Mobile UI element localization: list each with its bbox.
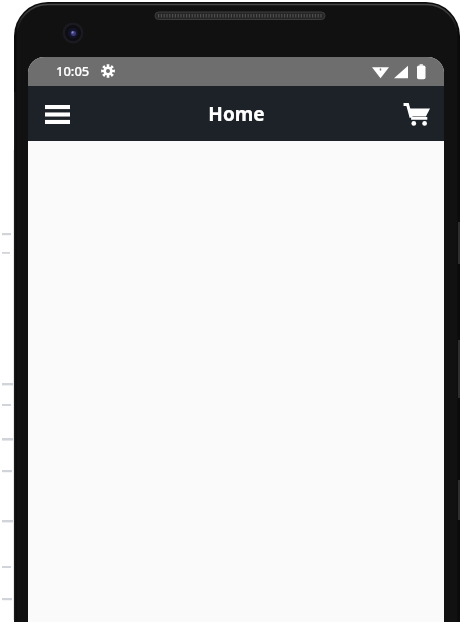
staticText: 10:05 [56, 62, 90, 80]
button[interactable]: Open navigation menu [33, 90, 81, 138]
button[interactable]: Shopping cart [392, 90, 440, 138]
staticText: Home [208, 101, 265, 127]
